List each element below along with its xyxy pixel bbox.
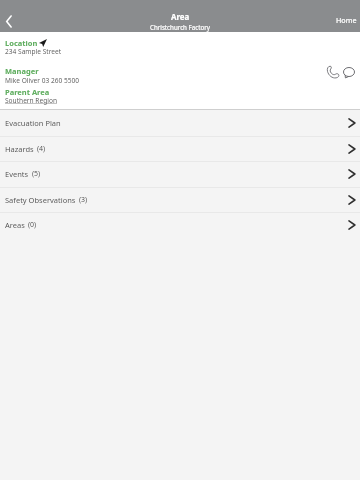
staticText: (0) [28, 220, 37, 230]
staticText: (3) [79, 195, 88, 205]
staticText: Manager [5, 66, 39, 76]
staticText: Parent Area [5, 87, 50, 97]
button[interactable]: Home [331, 14, 360, 29]
button[interactable]: Message [339, 62, 359, 82]
button[interactable]: Areas [0, 212, 360, 238]
button[interactable]: Events [0, 161, 360, 187]
staticText: Location [5, 38, 38, 48]
staticText: Areas [5, 220, 25, 230]
staticText: 234 Sample Street [5, 47, 62, 56]
button[interactable]: Back [0, 0, 24, 32]
button[interactable]: Call [323, 62, 343, 82]
button[interactable]: Safety Observations [0, 187, 360, 213]
staticText: Events [5, 169, 29, 179]
staticText: (4) [37, 144, 46, 154]
staticText: Home [336, 15, 357, 25]
staticText: Mike Oliver 03 260 5500 [5, 76, 80, 85]
button[interactable]: Hazards [0, 136, 360, 162]
staticText: Evacuation Plan [5, 118, 61, 128]
staticText: Southern Region [5, 96, 58, 105]
staticText: Area [171, 12, 190, 23]
staticText: Safety Observations [5, 195, 76, 205]
button[interactable]: Evacuation Plan [0, 110, 360, 136]
staticText: Hazards [5, 144, 34, 154]
staticText: (5) [32, 169, 41, 179]
staticText: Christchurch Factory [150, 23, 210, 31]
